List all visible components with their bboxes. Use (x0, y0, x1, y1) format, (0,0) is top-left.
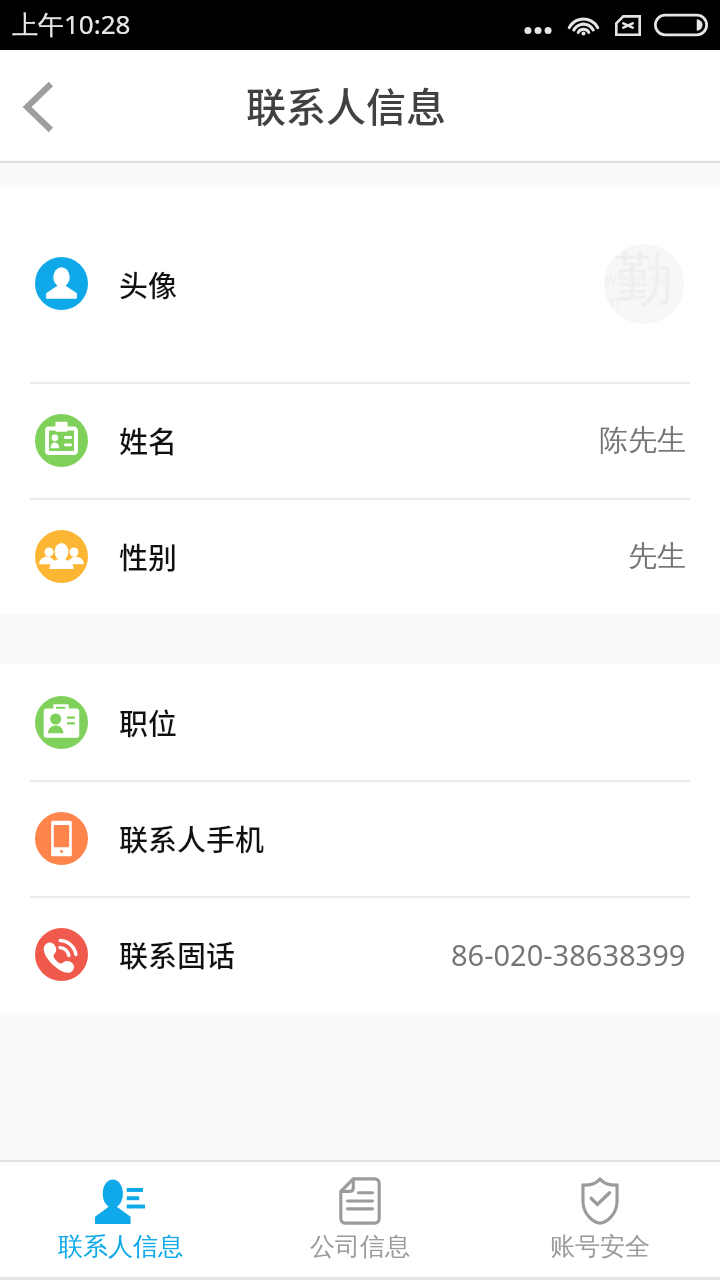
button[interactable]: 性别 (0, 498, 720, 614)
button[interactable]: 联系固话 (0, 896, 720, 1012)
staticText: 陈先生 (599, 422, 686, 459)
staticText: 账号安全 (550, 1231, 650, 1262)
staticText: 86-020-38638399 (451, 935, 686, 974)
staticText: 联系人手机 (119, 817, 265, 859)
staticText: 头像 (119, 263, 178, 305)
staticText: 勤 (615, 244, 673, 316)
button[interactable]: 联系人手机 (0, 780, 720, 896)
button[interactable]: 姓名 (0, 382, 720, 498)
staticText: 姓名 (119, 419, 178, 461)
staticText: 职位 (119, 701, 178, 743)
button[interactable]: 联系人信息 (0, 1162, 240, 1277)
staticText: 先生 (628, 538, 686, 575)
button[interactable]: 返回 (0, 50, 77, 163)
staticText: 公司信息 (310, 1231, 410, 1262)
button[interactable]: 公司信息 (240, 1162, 480, 1277)
staticText: 性别 (119, 535, 178, 577)
staticText: 联系人信息 (246, 76, 446, 134)
staticText: 上午10:28 (12, 6, 131, 42)
staticText: w168.com (604, 267, 684, 313)
button[interactable]: 账号安全 (480, 1162, 720, 1277)
button[interactable]: 头像 (0, 185, 720, 382)
button[interactable]: 职位 (0, 664, 720, 780)
staticText: 联系固话 (119, 933, 236, 975)
staticText: 联系人信息 (58, 1231, 183, 1262)
